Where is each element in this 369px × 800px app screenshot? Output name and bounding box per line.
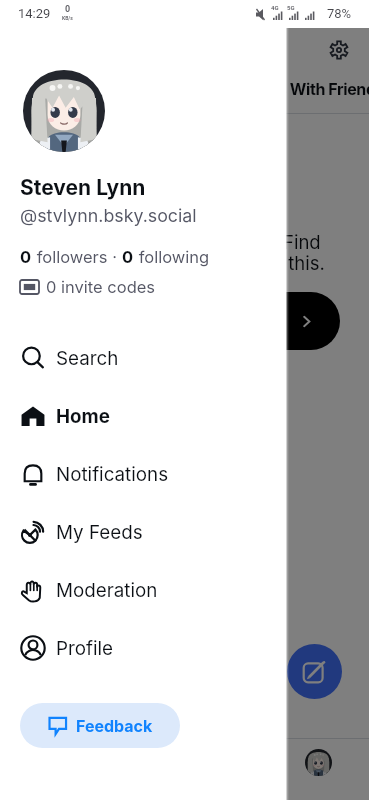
other: Next [300, 315, 313, 328]
staticText: 0 invite codes [46, 277, 156, 297]
staticText: Find this. [283, 231, 325, 274]
button[interactable]: Settings [330, 41, 348, 59]
staticText: @stvlynn.bsky.social [20, 205, 197, 227]
staticText: 5G [287, 4, 295, 11]
staticText: 14:29 [18, 6, 51, 21]
staticText: Home [56, 405, 110, 428]
button[interactable]: Moderation [0, 561, 286, 619]
staticText: Feedback [76, 716, 153, 735]
button[interactable]: New post [287, 644, 342, 699]
staticText: 0 [122, 247, 134, 267]
button[interactable]: Feedback [20, 703, 180, 748]
staticText: following [134, 247, 210, 267]
staticText: 78% [327, 6, 352, 21]
button[interactable]: Next [220, 292, 340, 350]
staticText: My Feeds [56, 521, 143, 544]
staticText: Discover Feeds With Friends [172, 79, 369, 98]
staticText: 0 [20, 247, 32, 267]
button[interactable]: Home [0, 387, 286, 445]
staticText: Search [56, 347, 119, 370]
button[interactable]: My Feeds [0, 503, 286, 561]
staticText: Moderation [56, 579, 158, 602]
staticText: 4G [271, 4, 279, 11]
button[interactable]: Profile [305, 749, 332, 776]
button[interactable]: Search [0, 329, 286, 387]
staticText: Notifications [56, 463, 169, 486]
button[interactable]: Notifications [0, 445, 286, 503]
staticText: 0 [65, 4, 71, 15]
staticText: followers · [32, 247, 122, 267]
staticText: Profile [56, 637, 114, 660]
staticText: KB/s [62, 15, 73, 21]
staticText: Steven Lynn [20, 175, 146, 200]
button[interactable]: Profile [0, 619, 286, 677]
